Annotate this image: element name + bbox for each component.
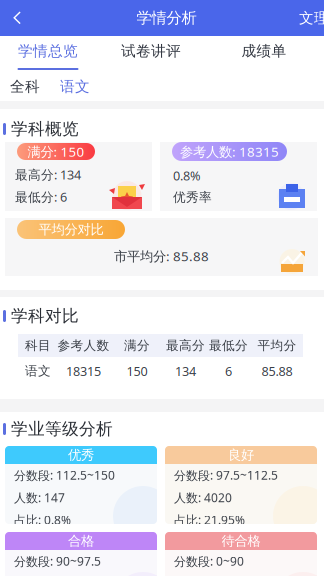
staticText: 最低分: 6 — [15, 188, 67, 206]
staticText: 参考人数 — [57, 337, 109, 353]
staticText: 0.8% — [173, 167, 201, 184]
staticText: 平均分 — [257, 337, 296, 353]
staticText: 学科概览 — [11, 118, 79, 139]
staticText: 学情分析 — [136, 8, 196, 28]
staticText: 试卷讲评 — [121, 42, 181, 60]
staticText: 语文 — [60, 77, 90, 96]
staticText: 最低分 — [209, 337, 248, 353]
staticText: 学业等级分析 — [11, 418, 113, 439]
button[interactable]: 待合格 — [165, 532, 317, 576]
staticText: 占比: 0.8% — [14, 512, 71, 528]
staticText: 文理 — [299, 9, 324, 27]
staticText: 人数: 147 — [14, 489, 65, 506]
staticText: 学情总览 — [18, 42, 78, 60]
staticText: 分数段: 0~90 — [174, 553, 244, 569]
staticText: 满分 — [124, 337, 150, 353]
staticText: 科目 — [25, 337, 51, 353]
button[interactable]: 试卷讲评 — [96, 36, 206, 72]
staticText: 85.88 — [261, 362, 292, 380]
staticText: 150 — [126, 362, 147, 380]
staticText: 分数段: 97.5~112.5 — [174, 467, 278, 483]
button[interactable]: 成绩单 — [206, 36, 322, 72]
staticText: 语文 — [25, 363, 51, 379]
button[interactable]: 良好 — [165, 446, 317, 524]
staticText: 合格 — [68, 533, 94, 549]
staticText: 学科对比 — [11, 305, 79, 326]
button[interactable]: 学情总览 — [0, 36, 96, 72]
staticText: 参考人数: 18315 — [180, 142, 279, 161]
staticText: 最高分: 134 — [15, 166, 81, 183]
button[interactable]: 语文 — [50, 72, 100, 101]
staticText: 134 — [175, 362, 196, 380]
staticText: 满分: 150 — [27, 142, 84, 161]
staticText: 人数: 4020 — [174, 489, 232, 506]
staticText: 分数段: 90~97.5 — [14, 553, 101, 569]
staticText: 占比: 21.95% — [174, 512, 245, 528]
button[interactable]: Back — [0, 0, 34, 36]
staticText: 优秀 — [68, 447, 94, 463]
staticText: 18315 — [66, 362, 101, 380]
button[interactable]: 合格 — [5, 532, 157, 576]
staticText: 良好 — [228, 447, 254, 463]
staticText: 待合格 — [221, 533, 260, 549]
staticText: 成绩单 — [241, 42, 286, 60]
staticText: 全科 — [10, 77, 40, 96]
staticText: 最高分 — [166, 337, 205, 353]
button[interactable]: 优秀 — [5, 446, 157, 524]
staticText: 市平均分: 85.88 — [114, 247, 209, 265]
staticText: 分数段: 112.5~150 — [14, 467, 115, 483]
button[interactable]: 全科 — [0, 72, 50, 101]
staticText: 6 — [225, 362, 232, 380]
staticText: 平均分对比 — [38, 221, 103, 238]
button[interactable]: 文理 — [299, 0, 324, 36]
staticText: 优秀率 — [173, 189, 212, 205]
